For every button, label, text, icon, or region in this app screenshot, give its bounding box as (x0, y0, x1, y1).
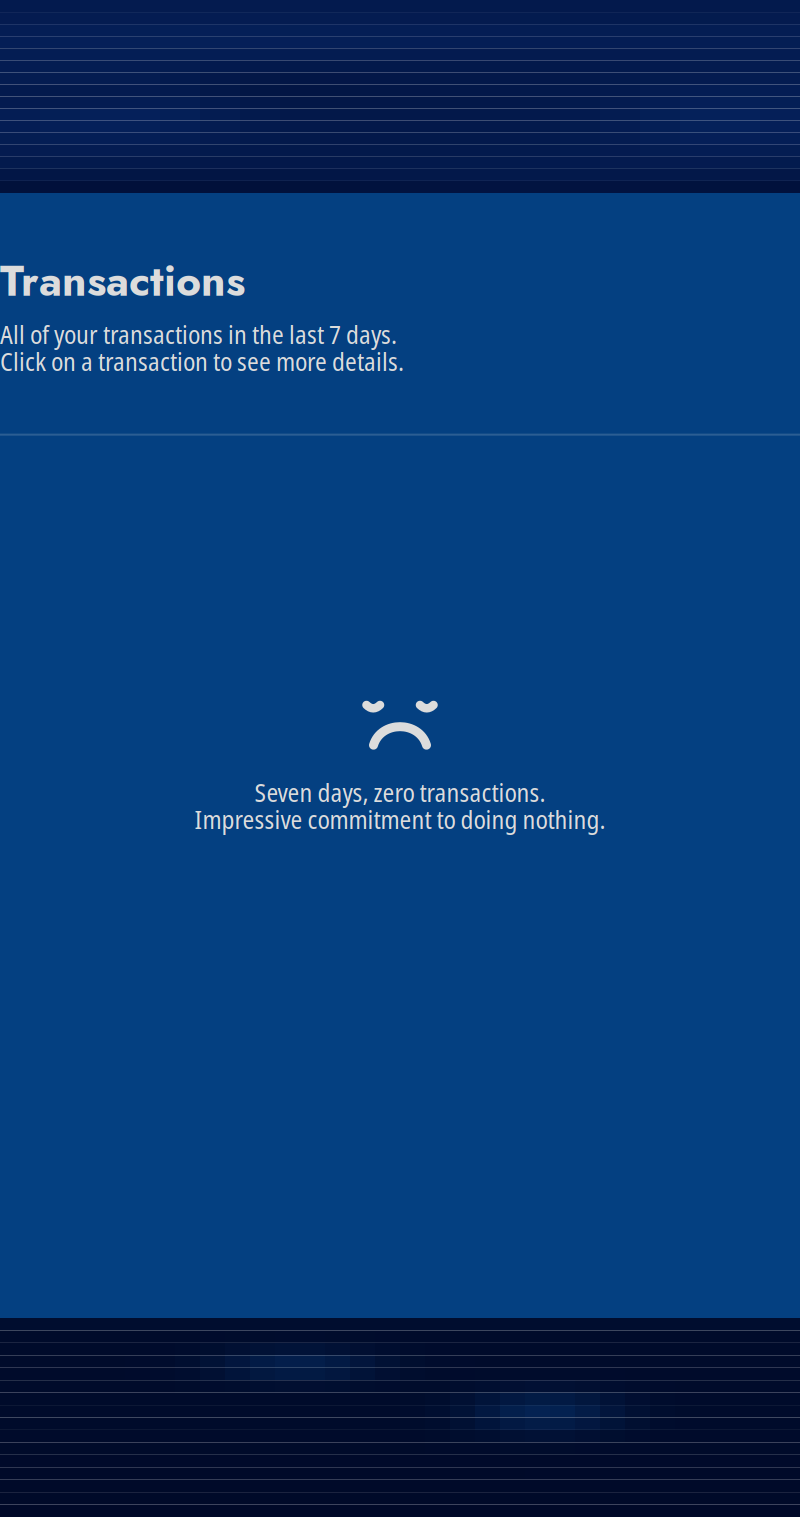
staticText: All of your transactions in the last 7 d… (0, 317, 397, 351)
staticText: Click on a transaction to see more detai… (0, 344, 404, 378)
staticText: Impressive commitment to doing nothing. (194, 802, 605, 836)
staticText: Seven days, zero transactions. (254, 775, 545, 809)
staticText: Transactions (0, 250, 245, 312)
